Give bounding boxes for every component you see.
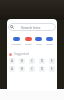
staticText: Suggested: [14, 52, 29, 56]
button[interactable]: Translate: [13, 37, 20, 41]
staticText: D: [41, 67, 44, 71]
staticText: B: [21, 67, 23, 71]
staticText: C: [31, 59, 33, 63]
staticText: D: [41, 59, 44, 63]
staticText: Shop: [36, 43, 42, 46]
button[interactable]: B: [19, 58, 25, 64]
button[interactable]: Shop: [35, 37, 42, 41]
button[interactable]: B: [19, 66, 25, 72]
button[interactable]: A: [9, 66, 15, 72]
staticText: C: [31, 67, 33, 71]
button[interactable]: D: [39, 66, 45, 72]
button[interactable]: Places: [46, 37, 53, 41]
staticText: A: [11, 59, 13, 63]
staticText: A: [11, 67, 13, 71]
staticText: B: [21, 59, 23, 63]
staticText: Search: [25, 43, 32, 46]
button[interactable]: C: [29, 66, 35, 72]
button[interactable]: C: [29, 58, 35, 64]
staticText: Search here: [21, 25, 41, 30]
button[interactable]: Search here: [8, 23, 56, 31]
button[interactable]: A: [9, 58, 15, 64]
button[interactable]: E: [49, 66, 55, 72]
button[interactable]: D: [39, 58, 45, 64]
button[interactable]: Suggested: [9, 51, 55, 57]
staticText: Translate: [11, 43, 21, 46]
button[interactable]: Search: [25, 37, 32, 41]
staticText: E: [51, 67, 53, 71]
button[interactable]: E: [49, 58, 55, 64]
staticText: Places: [46, 43, 53, 46]
staticText: E: [51, 59, 53, 63]
